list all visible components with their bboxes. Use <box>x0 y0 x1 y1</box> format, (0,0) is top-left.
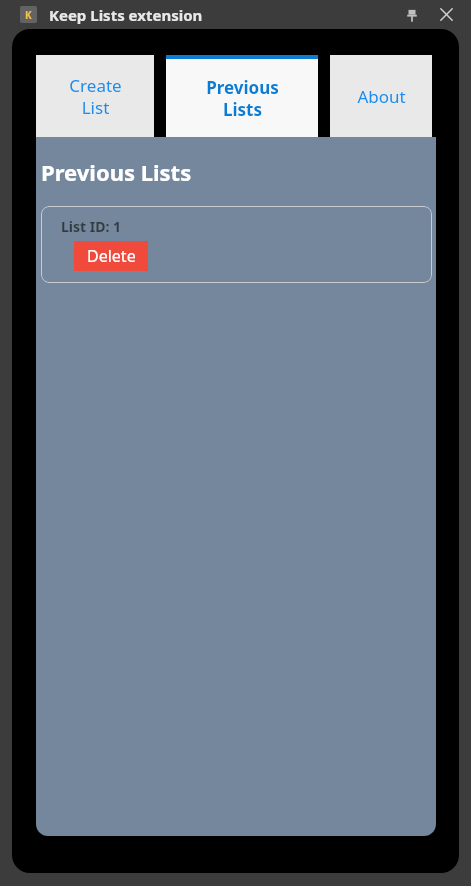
staticText: About <box>357 85 406 108</box>
staticText: Previous Lists <box>41 157 192 187</box>
button[interactable]: Pin <box>395 0 429 29</box>
button[interactable]: Previous Lists <box>166 55 318 137</box>
staticText: Keep Lists extension <box>49 5 203 25</box>
staticText: K <box>25 8 32 22</box>
staticText: Previous Lists <box>206 76 279 121</box>
button[interactable]: Delete <box>74 241 148 271</box>
button[interactable]: Create List <box>36 55 154 137</box>
button[interactable]: Close <box>429 0 463 29</box>
staticText: List ID: 1 <box>61 217 122 236</box>
staticText: Create List <box>69 74 122 119</box>
button[interactable]: List ID: 1 <box>41 206 432 283</box>
button[interactable]: About <box>330 55 432 137</box>
staticText: Delete <box>87 245 136 267</box>
